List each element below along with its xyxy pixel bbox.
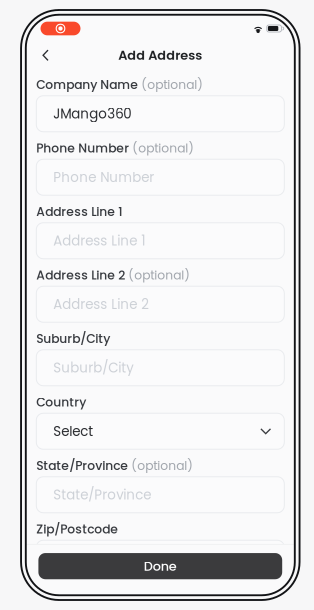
staticText: Address Line 2	[53, 295, 149, 314]
staticText: (optional)	[132, 140, 194, 157]
staticText: Company Name	[36, 76, 138, 93]
staticText: (optional)	[141, 76, 203, 93]
button[interactable]: Address Line 1	[36, 195, 284, 259]
button[interactable]: Done	[38, 553, 282, 579]
staticText: Phone Number	[36, 140, 129, 157]
button[interactable]: State/Province	[36, 449, 284, 513]
staticText: Zip/Postcode	[53, 549, 141, 568]
button[interactable]: Country	[36, 386, 284, 449]
staticText: Address Line 1	[36, 203, 122, 220]
staticText: Address Line 1	[53, 231, 145, 250]
button[interactable]: Suburb/City	[36, 322, 284, 386]
staticText: JMango360	[53, 104, 131, 123]
staticText: State/Province	[36, 457, 128, 474]
button[interactable]: Back	[26, 44, 57, 66]
staticText: State/Province	[53, 485, 151, 504]
staticText: Select	[53, 422, 93, 441]
button[interactable]: Phone Number	[36, 132, 284, 195]
staticText: Country	[36, 394, 86, 411]
staticText: Suburb/City	[36, 330, 110, 347]
staticText: Done	[144, 557, 177, 575]
staticText: (optional)	[131, 457, 193, 474]
staticText: Add Address	[118, 46, 202, 64]
staticText: (optional)	[128, 267, 190, 284]
button[interactable]: Zip/Postcode	[36, 513, 284, 576]
staticText: Address Line 2	[36, 267, 125, 284]
staticText: Zip/Postcode	[36, 521, 118, 538]
button[interactable]: Company Name	[36, 68, 284, 132]
staticText: Suburb/City	[53, 358, 134, 377]
staticText: Phone Number	[53, 168, 154, 187]
button[interactable]: Address Line 2	[36, 259, 284, 322]
